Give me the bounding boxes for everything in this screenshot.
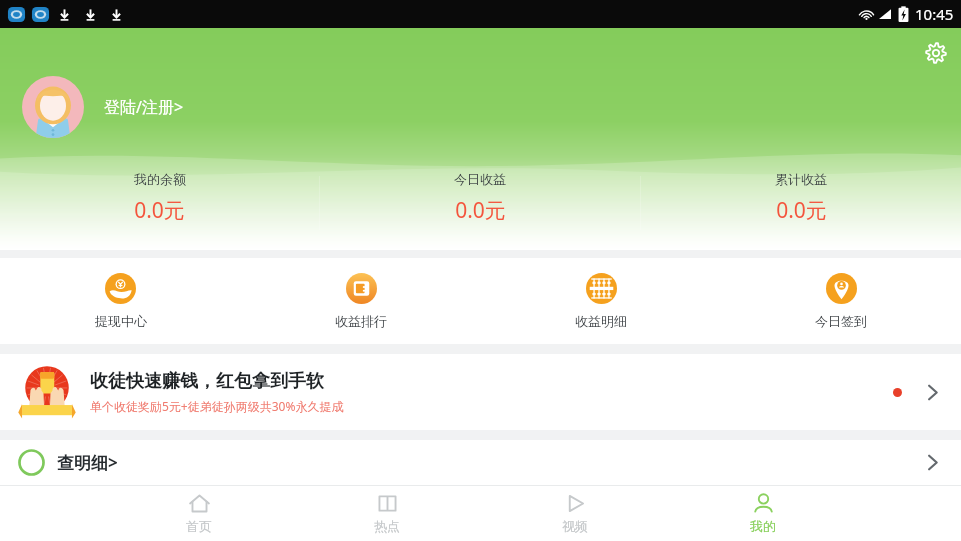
staticText: 提现中心 [95, 313, 147, 329]
button[interactable]: 我的余额 [0, 171, 319, 235]
button[interactable]: 视频 [481, 485, 669, 541]
staticText: 我的 [750, 518, 776, 534]
button[interactable]: 首页 [105, 485, 293, 541]
button[interactable]: 查明细> [0, 440, 961, 485]
staticText: 0.0元 [776, 196, 827, 225]
button[interactable]: 提现中心 [0, 258, 241, 344]
staticText: 10:45 [915, 4, 954, 24]
button[interactable]: 今日收益 [320, 171, 640, 235]
staticText: 累计收益 [775, 171, 827, 187]
button[interactable]: 收徒快速赚钱，红包拿到手软 [0, 354, 961, 430]
staticText: 0.0元 [455, 196, 506, 225]
staticText: 查明细> [57, 451, 118, 474]
staticText: 收益明细 [575, 313, 627, 329]
staticText: 我的余额 [134, 171, 186, 187]
button[interactable]: 我的 [669, 485, 857, 541]
button[interactable]: Settings [917, 34, 955, 72]
button[interactable]: 收益明细 [481, 258, 721, 344]
button[interactable]: 收益排行 [241, 258, 481, 344]
button[interactable]: 登陆/注册> [22, 76, 184, 138]
button[interactable]: 今日签到 [721, 258, 961, 344]
staticText: 热点 [374, 518, 400, 534]
staticText: 单个收徒奖励5元+徒弟徒孙两级共30%永久提成 [90, 398, 344, 414]
staticText: 视频 [562, 518, 588, 534]
staticText: 收益排行 [335, 313, 387, 329]
staticText: 今日收益 [454, 171, 506, 187]
staticText: 登陆/注册> [104, 96, 184, 118]
staticText: 今日签到 [815, 313, 867, 329]
button[interactable]: 累计收益 [641, 171, 961, 235]
staticText: 首页 [186, 518, 212, 534]
staticText: 收徒快速赚钱，红包拿到手软 [90, 370, 324, 393]
button[interactable]: 热点 [293, 485, 481, 541]
staticText: 0.0元 [134, 196, 185, 225]
